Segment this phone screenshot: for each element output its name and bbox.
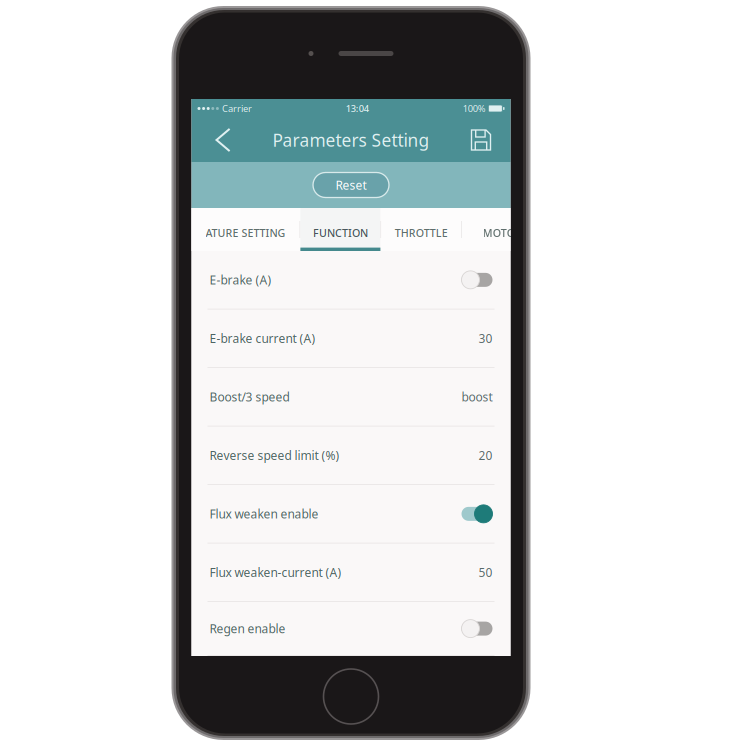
button[interactable]: Boost/3 speed <box>191 368 510 426</box>
button[interactable]: THROTTLE <box>381 208 461 251</box>
staticText: E-brake current (A) <box>209 330 315 346</box>
button[interactable]: Back <box>191 118 254 162</box>
staticText: Carrier <box>222 102 252 115</box>
button[interactable]: Flux weaken-current (A) <box>191 543 510 602</box>
staticText: THROTTLE <box>395 226 448 240</box>
staticText: Flux weaken enable <box>209 506 318 522</box>
staticText: 30 <box>478 330 492 346</box>
button[interactable]: Flux weaken enable <box>191 485 510 543</box>
staticText: 50 <box>478 564 492 580</box>
button[interactable]: Save <box>451 118 510 162</box>
button[interactable]: E-brake (A) <box>191 251 510 309</box>
staticText: 13:04 <box>346 102 369 115</box>
staticText: Parameters Setting <box>272 128 429 151</box>
staticText: Flux weaken-current (A) <box>209 564 341 580</box>
staticText: boost <box>461 389 492 405</box>
button[interactable]: Regen enable <box>191 602 510 656</box>
staticText: ATURE SETTING <box>205 226 285 240</box>
staticText: 20 <box>478 447 492 463</box>
button[interactable]: Reverse speed limit (%) <box>191 426 510 485</box>
button[interactable]: FUNCTION <box>300 208 380 251</box>
staticText: FUNCTION <box>313 226 368 240</box>
button[interactable]: MOTOR <box>462 208 542 251</box>
staticText: Reset <box>335 177 366 193</box>
staticText: 100% <box>463 102 486 115</box>
button[interactable]: E-brake current (A) <box>191 309 510 368</box>
staticText: MOTOR <box>483 226 522 240</box>
staticText: Regen enable <box>209 621 285 636</box>
button[interactable]: Reset <box>313 172 389 197</box>
staticText: E-brake (A) <box>209 272 271 288</box>
button[interactable]: ATURE SETTING <box>191 208 299 251</box>
staticText: Boost/3 speed <box>209 389 289 405</box>
staticText: Reverse speed limit (%) <box>209 447 339 463</box>
